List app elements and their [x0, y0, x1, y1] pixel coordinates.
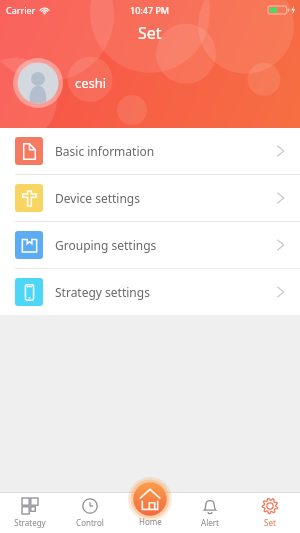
staticText: Carrier — [6, 4, 36, 16]
staticText: Set — [138, 22, 162, 44]
staticText: 10:47 PM — [130, 4, 170, 16]
staticText: Alert — [201, 517, 219, 528]
button[interactable]: Basic information — [0, 128, 300, 174]
button[interactable]: Strategy settings — [0, 269, 300, 315]
staticText: Control — [76, 517, 104, 528]
button[interactable]: Alert — [180, 492, 240, 533]
staticText: Device settings — [55, 190, 276, 206]
staticText: Strategy settings — [55, 284, 276, 300]
button[interactable]: Control — [60, 492, 120, 533]
staticText: Set — [264, 517, 276, 528]
staticText: ceshi — [75, 74, 107, 92]
button[interactable]: Grouping settings — [0, 222, 300, 268]
button[interactable]: Device settings — [0, 175, 300, 221]
button[interactable]: Strategy — [0, 492, 60, 533]
staticText: Strategy — [14, 517, 46, 528]
button[interactable]: Home — [128, 477, 172, 521]
button[interactable]: Set — [240, 492, 300, 533]
staticText: Home — [139, 516, 162, 527]
staticText: Grouping settings — [55, 237, 276, 253]
staticText: Basic information — [55, 143, 276, 159]
